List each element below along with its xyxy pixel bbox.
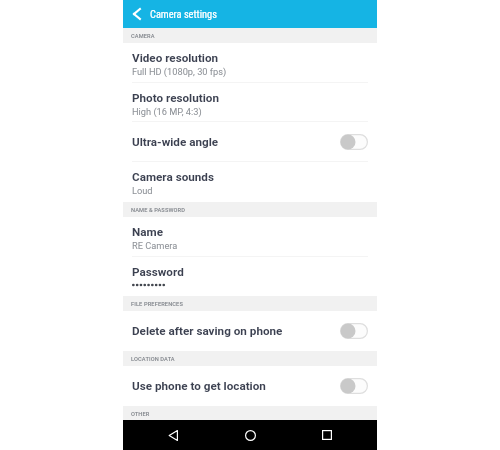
button[interactable]: Ultra-wide angle: [123, 122, 377, 162]
staticText: Password: [132, 265, 184, 279]
staticText: Name: [132, 225, 163, 239]
button[interactable]: Home: [238, 423, 262, 447]
button[interactable]: Back: [161, 423, 185, 447]
button[interactable]: Toggle off: [340, 378, 368, 394]
button[interactable]: Delete after saving on phone: [123, 311, 377, 351]
staticText: Camera settings: [150, 8, 217, 20]
button[interactable]: Password: [123, 257, 377, 296]
button[interactable]: Camera sounds: [123, 162, 377, 202]
button[interactable]: Toggle off: [340, 323, 368, 339]
button[interactable]: Photo resolution: [123, 83, 377, 122]
button[interactable]: Toggle off: [340, 134, 368, 150]
button[interactable]: Recent apps: [315, 423, 339, 447]
staticText: FILE PREFERENCES: [131, 301, 183, 308]
staticText: Loud: [132, 185, 153, 196]
staticText: Video resolution: [132, 51, 219, 65]
button[interactable]: Use phone to get location: [123, 366, 377, 406]
button[interactable]: Navigate up: [123, 0, 150, 28]
staticText: OTHER: [131, 411, 150, 418]
staticText: Use phone to get location: [132, 379, 266, 393]
staticText: Delete after saving on phone: [132, 324, 283, 338]
staticText: LOCATION DATA: [131, 356, 175, 363]
button[interactable]: Video resolution: [123, 43, 377, 83]
staticText: Photo resolution: [132, 91, 219, 105]
staticText: High (16 MP, 4:3): [132, 106, 202, 117]
button[interactable]: Name: [123, 217, 377, 257]
staticText: Full HD (1080p, 30 fps): [132, 66, 227, 77]
staticText: Ultra-wide angle: [132, 135, 219, 149]
staticText: RE Camera: [132, 240, 178, 251]
staticText: Camera sounds: [132, 170, 214, 184]
staticText: CAMERA: [131, 33, 155, 40]
staticText: NAME & PASSWORD: [131, 207, 186, 214]
